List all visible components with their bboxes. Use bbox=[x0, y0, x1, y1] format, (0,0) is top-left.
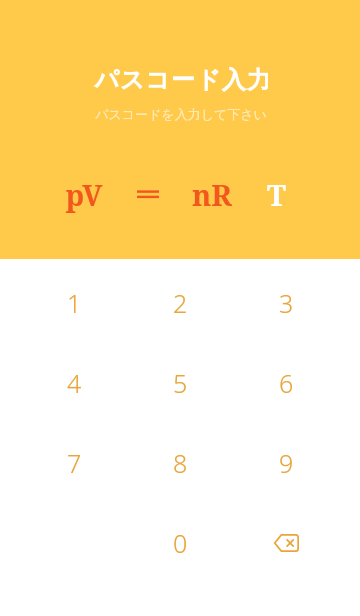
button[interactable]: 1 bbox=[21, 263, 127, 343]
staticText: パスコードを入力して下さい bbox=[95, 106, 267, 122]
staticText: 0 bbox=[173, 526, 188, 560]
button[interactable]: 7 bbox=[21, 423, 127, 503]
staticText: 1 bbox=[67, 286, 82, 320]
button[interactable]: 6 bbox=[233, 343, 339, 423]
staticText: 8 bbox=[173, 446, 188, 480]
button[interactable]: 9 bbox=[233, 423, 339, 503]
staticText: 7 bbox=[67, 446, 82, 480]
staticText: T bbox=[267, 175, 286, 214]
button[interactable]: 4 bbox=[21, 343, 127, 423]
staticText: 9 bbox=[279, 446, 294, 480]
staticText: 5 bbox=[173, 366, 188, 400]
staticText: パスコード入力 bbox=[94, 65, 272, 95]
button[interactable]: 0 bbox=[127, 503, 233, 583]
staticText: 4 bbox=[67, 366, 82, 400]
staticText: pV bbox=[65, 175, 103, 214]
button[interactable]: 8 bbox=[127, 423, 233, 503]
button[interactable]: Backspace bbox=[233, 503, 339, 583]
button[interactable]: 2 bbox=[127, 263, 233, 343]
button[interactable]: 3 bbox=[233, 263, 339, 343]
staticText: 6 bbox=[279, 366, 294, 400]
button[interactable]: 5 bbox=[127, 343, 233, 423]
staticText: 3 bbox=[279, 286, 294, 320]
staticText: 2 bbox=[173, 286, 188, 320]
staticText: nR bbox=[192, 175, 232, 214]
